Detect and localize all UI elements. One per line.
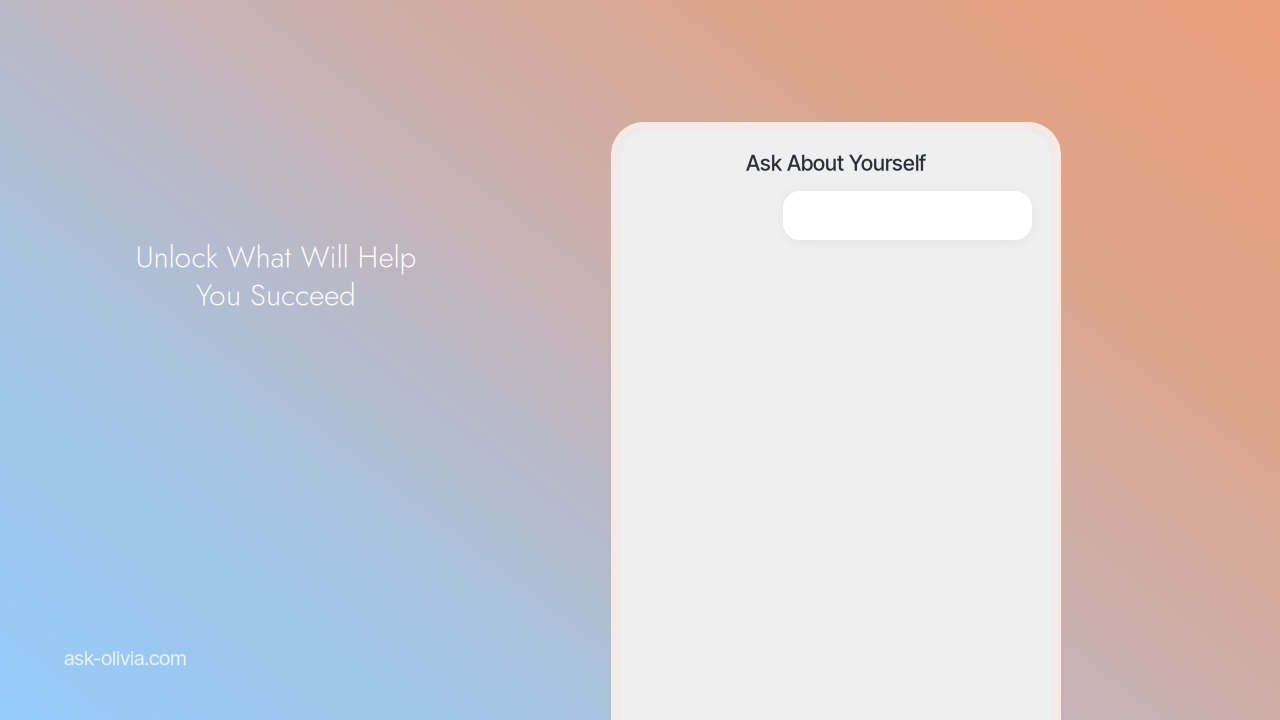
staticText: You Succeed (196, 273, 356, 317)
staticText: Unlock What Will Help (135, 235, 416, 279)
staticText: Ask About Yourself (746, 150, 926, 176)
staticText: ask-olivia.com (64, 646, 186, 670)
button[interactable]: ask-olivia.com (64, 645, 186, 671)
